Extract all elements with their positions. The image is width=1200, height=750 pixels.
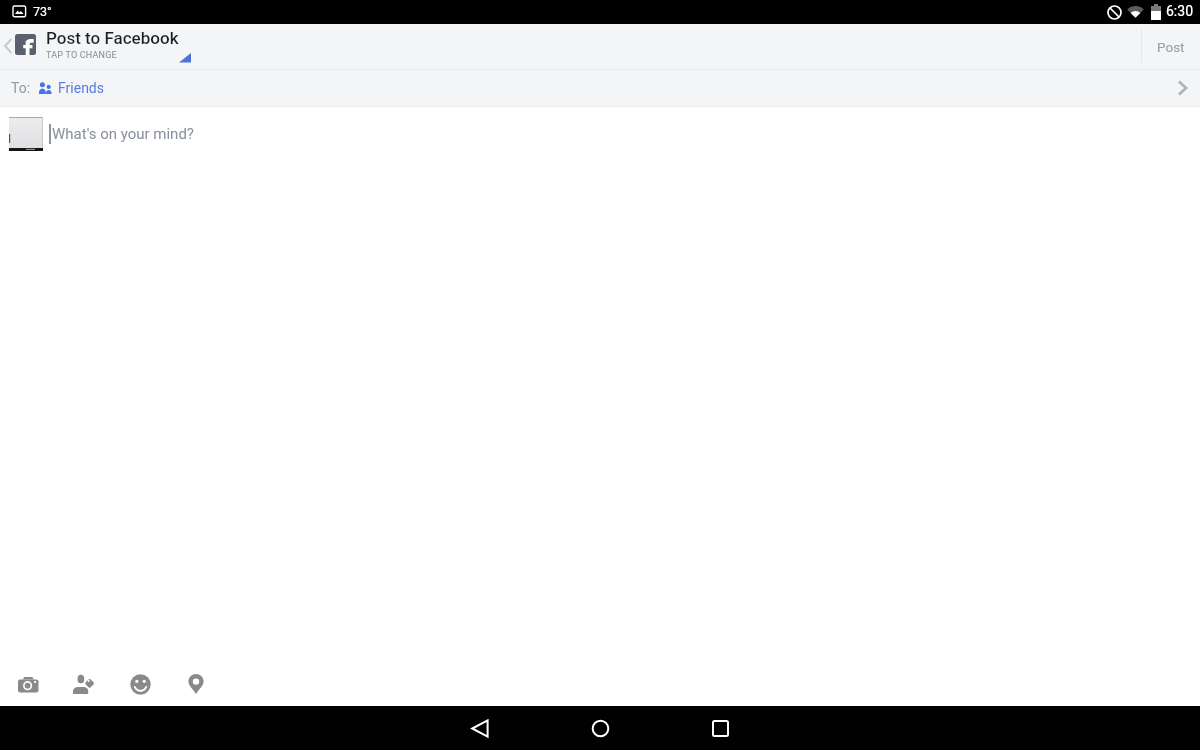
staticText: 73° bbox=[33, 4, 52, 19]
staticText: 6:30 bbox=[1166, 3, 1193, 19]
button[interactable] bbox=[15, 34, 36, 55]
button[interactable] bbox=[0, 662, 56, 706]
staticText: Post bbox=[1157, 39, 1185, 55]
staticText: TAP TO CHANGE bbox=[46, 50, 117, 61]
button[interactable] bbox=[112, 662, 168, 706]
staticText: Post to Facebook bbox=[46, 28, 179, 48]
button[interactable] bbox=[470, 719, 490, 738]
staticText: Friends bbox=[58, 80, 104, 96]
staticText: What's on your mind? bbox=[52, 125, 194, 143]
button[interactable]: To: bbox=[0, 70, 1200, 106]
button[interactable] bbox=[168, 662, 224, 706]
button[interactable] bbox=[9, 117, 43, 151]
button[interactable] bbox=[712, 720, 729, 737]
button[interactable]: Post bbox=[1142, 24, 1200, 69]
button[interactable]: Post to Facebook bbox=[46, 28, 179, 61]
button[interactable] bbox=[591, 719, 610, 738]
staticText: To: bbox=[11, 80, 31, 96]
button[interactable] bbox=[56, 662, 112, 706]
